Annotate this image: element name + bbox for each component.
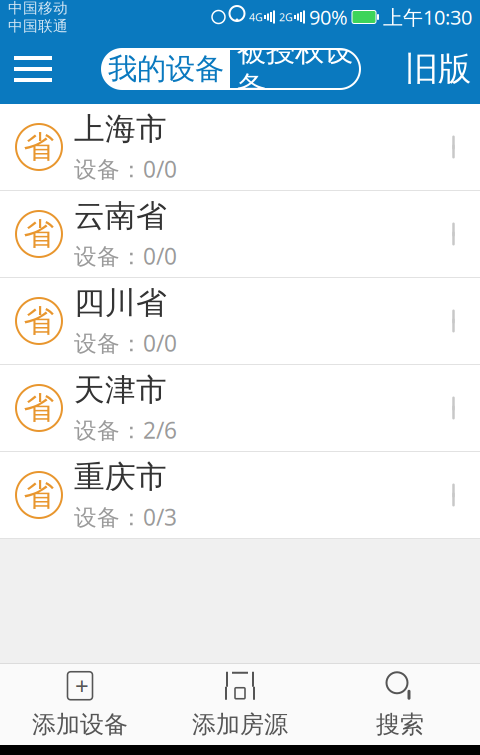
staticText: 被授权设备: [237, 33, 353, 105]
staticText: 旧版: [405, 48, 471, 89]
staticText: 添加房源: [192, 710, 288, 739]
button[interactable]: 省: [0, 278, 480, 364]
staticText: 90%: [309, 4, 348, 30]
button[interactable]: 搜索: [320, 664, 480, 745]
staticText: 设备：0/0: [74, 154, 177, 184]
staticText: 4G: [249, 10, 263, 24]
staticText: 我的设备: [108, 51, 224, 87]
staticText: 2G: [279, 10, 293, 24]
staticText: 设备：0/3: [74, 502, 177, 532]
staticText: 省: [23, 302, 54, 340]
button[interactable]: +: [0, 664, 160, 745]
button[interactable]: 省: [0, 452, 480, 538]
staticText: 省: [23, 215, 54, 253]
button[interactable]: 省: [0, 104, 480, 190]
staticText: 上午10:30: [383, 4, 472, 30]
staticText: 天津市: [74, 371, 167, 409]
staticText: 中国移动: [8, 0, 68, 17]
staticText: 四川省: [74, 284, 167, 322]
button[interactable]: 旧版: [396, 34, 480, 104]
staticText: 添加设备: [32, 710, 128, 739]
staticText: 中国联通: [8, 17, 68, 35]
staticText: 上海市: [74, 110, 167, 148]
staticText: 搜索: [376, 710, 424, 739]
staticText: 云南省: [74, 197, 167, 235]
button[interactable]: 添加房源: [160, 664, 320, 745]
staticText: 设备：2/6: [74, 415, 177, 445]
staticText: 设备：0/0: [74, 328, 177, 358]
button[interactable]: 省: [0, 365, 480, 451]
button[interactable]: 我的设备: [102, 49, 230, 89]
staticText: 省: [23, 389, 54, 427]
staticText: 重庆市: [74, 458, 167, 496]
button[interactable]: 省: [0, 191, 480, 277]
staticText: +: [75, 670, 89, 702]
button[interactable]: 菜单: [0, 34, 66, 104]
button[interactable]: 被授权设备: [230, 49, 360, 89]
staticText: 省: [23, 128, 54, 166]
staticText: 设备：0/0: [74, 241, 177, 271]
staticText: 省: [23, 476, 54, 514]
